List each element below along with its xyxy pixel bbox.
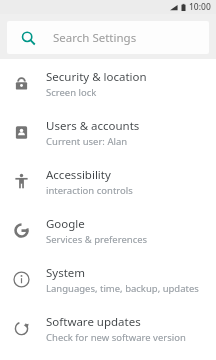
- button[interactable]: Security & location: [0, 59, 216, 108]
- button[interactable]: Google: [0, 206, 216, 255]
- staticText: System: [46, 265, 86, 281]
- staticText: Google: [46, 216, 85, 232]
- staticText: interaction controls: [46, 184, 133, 197]
- staticText: Security & location: [46, 69, 147, 85]
- staticText: Screen lock: [46, 86, 97, 99]
- staticText: Check for new software version: [46, 331, 186, 344]
- button[interactable]: Accessibility: [0, 157, 216, 206]
- staticText: Software updates: [46, 314, 141, 330]
- button[interactable]: System: [0, 255, 216, 304]
- staticText: Languages, time, backup, updates: [46, 282, 199, 295]
- button[interactable]: Software updates: [0, 304, 216, 353]
- button[interactable]: Users & accounts: [0, 108, 216, 157]
- button[interactable]: Search Settings: [7, 21, 209, 54]
- staticText: Services & preferences: [46, 233, 148, 246]
- staticText: Search Settings: [53, 30, 137, 46]
- staticText: Accessibility: [46, 167, 111, 183]
- staticText: 10:00: [189, 1, 211, 13]
- staticText: Current user: Alan: [46, 135, 128, 148]
- staticText: Users & accounts: [46, 118, 140, 134]
